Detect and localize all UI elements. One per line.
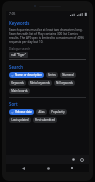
staticText: Series (48, 73, 56, 77)
staticText: Meta keywords (30, 81, 50, 85)
staticText: Dialogue search (9, 47, 31, 51)
staticText: Nil keywords (56, 81, 73, 85)
staticText: Name or description (15, 73, 42, 77)
staticText: Search (9, 64, 24, 70)
staticText: First submitted (35, 118, 55, 122)
staticText: Alias (38, 110, 45, 114)
staticText: Release date (15, 110, 32, 114)
button[interactable]: Main boards (9, 88, 30, 94)
button[interactable]: Filter (70, 156, 77, 163)
button[interactable]: Keywords (9, 80, 26, 86)
staticText: Search queries must be at least two char… (9, 28, 86, 44)
staticText: Keywords (9, 20, 30, 26)
button[interactable]: Meta keywords (28, 80, 52, 86)
button[interactable]: Last updated (9, 117, 31, 123)
button[interactable]: Series (46, 72, 58, 78)
button[interactable]: Search (78, 156, 85, 163)
button[interactable]: Release date (9, 109, 34, 115)
staticText: Keywords (11, 81, 24, 85)
button[interactable]: Home (41, 164, 55, 172)
button[interactable]: Back (16, 164, 30, 172)
button[interactable]: Name or description (9, 72, 44, 78)
staticText: 7:05 (9, 12, 16, 16)
button[interactable]: Popularity (49, 109, 67, 115)
staticText: null "Tiger" (11, 53, 26, 57)
button[interactable]: Recents (65, 164, 79, 172)
button[interactable]: First submitted (33, 117, 57, 123)
staticText: Popularity (51, 110, 65, 114)
staticText: Sort (9, 101, 18, 107)
staticText: Last updated (11, 118, 29, 122)
button[interactable]: Alias (36, 109, 47, 115)
staticText: Main boards (11, 89, 28, 93)
staticText: Numeral (62, 73, 74, 77)
button[interactable]: Numeral (60, 72, 76, 78)
button[interactable]: Dialogue search (9, 47, 86, 60)
button[interactable]: Nil keywords (54, 80, 75, 86)
